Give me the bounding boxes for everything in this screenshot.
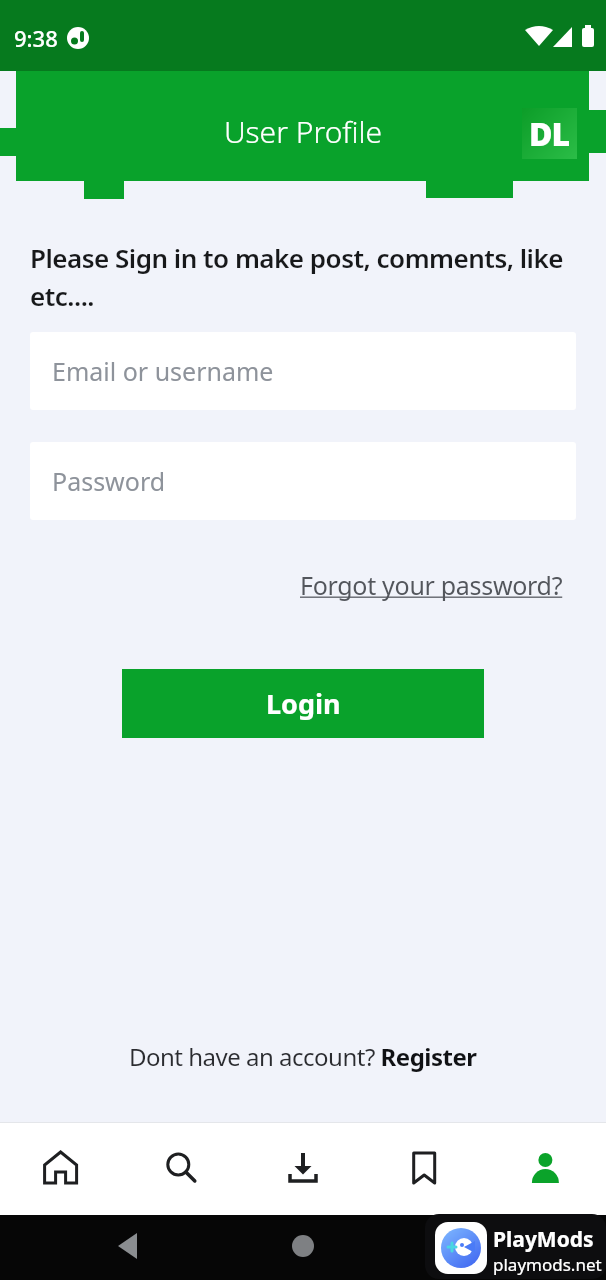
button[interactable] bbox=[243, 1122, 364, 1215]
staticText: PlayMods bbox=[493, 1225, 594, 1254]
button[interactable]: Dont have an account? Register bbox=[129, 1040, 477, 1073]
staticText: 9:38 bbox=[14, 23, 58, 53]
staticText: Please Sign in to make post, comments, l… bbox=[30, 240, 563, 313]
staticText: User Profile bbox=[0, 111, 606, 152]
staticText: DL bbox=[529, 112, 570, 156]
button[interactable]: Login bbox=[122, 669, 484, 738]
staticText: Email or username bbox=[52, 354, 274, 388]
button[interactable]: DL bbox=[522, 108, 577, 159]
staticText: Password bbox=[52, 464, 166, 498]
staticText: playmods.net bbox=[493, 1253, 602, 1276]
button[interactable] bbox=[364, 1122, 485, 1215]
button[interactable]: Email or username bbox=[30, 332, 576, 410]
button[interactable] bbox=[122, 1122, 243, 1215]
button[interactable] bbox=[0, 1122, 122, 1215]
button[interactable]: Password bbox=[30, 442, 576, 520]
staticText: Login bbox=[266, 685, 341, 722]
button[interactable]: Forgot your password? bbox=[300, 568, 563, 602]
button[interactable] bbox=[485, 1122, 606, 1215]
